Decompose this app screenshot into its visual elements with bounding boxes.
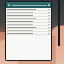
- button[interactable]: [6, 17, 51, 20]
- button[interactable]: [6, 11, 51, 14]
- button[interactable]: Menu: [7, 3, 11, 7]
- button[interactable]: [6, 29, 51, 32]
- button[interactable]: [6, 8, 51, 11]
- button[interactable]: [6, 23, 51, 26]
- button[interactable]: [6, 32, 51, 35]
- button[interactable]: [6, 20, 51, 23]
- button[interactable]: Menu: [6, 2, 51, 8]
- button[interactable]: [6, 14, 51, 17]
- button[interactable]: [6, 26, 51, 29]
